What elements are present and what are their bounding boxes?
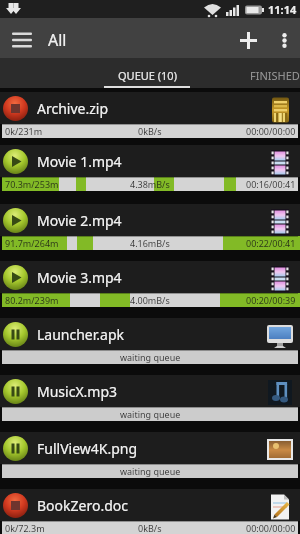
staticText: waiting queue (120, 408, 181, 420)
staticText: BookZero.doc (37, 496, 128, 515)
button[interactable]: Movie 1.mp4 (0, 141, 300, 200)
staticText: 4.00mB/s (130, 294, 170, 306)
staticText: QUEUE (10) (118, 68, 177, 83)
staticText: waiting queue (120, 465, 181, 477)
staticText: Archive.zip (37, 99, 108, 118)
staticText: All (48, 29, 67, 51)
button[interactable]: FINISHED (250, 58, 300, 88)
staticText: 00:16/00:41 (246, 178, 296, 190)
staticText: Movie 3.mp4 (37, 268, 122, 287)
button[interactable] (228, 20, 268, 60)
staticText: waiting queue (120, 351, 181, 363)
staticText: 11:14 (268, 2, 297, 17)
staticText: Launcher.apk (37, 325, 124, 344)
staticText: 4.16mB/s (130, 237, 170, 249)
staticText: FullView4K.png (37, 439, 138, 458)
button[interactable]: Movie 2.mp4 (0, 200, 300, 257)
staticText: 00:00/00:00 (246, 125, 296, 137)
staticText: FINISHED (250, 68, 300, 83)
staticText: 4.38mB/s (130, 178, 170, 190)
button[interactable]: MusicX.mp3 (0, 371, 300, 428)
button[interactable] (268, 20, 300, 60)
button[interactable] (0, 20, 44, 60)
button[interactable]: Movie 3.mp4 (0, 257, 300, 314)
staticText: 80.2m/239m (5, 294, 59, 306)
button[interactable]: Launcher.apk (0, 314, 300, 371)
staticText: Movie 2.mp4 (37, 211, 122, 230)
button[interactable]: FullView4K.png (0, 428, 300, 485)
button[interactable]: QUEUE (10) (52, 58, 242, 88)
staticText: 0k/72.3m (5, 522, 45, 534)
staticText: 0kB/s (138, 125, 162, 137)
staticText: Movie 1.mp4 (37, 152, 122, 171)
staticText: 00:22/00:41 (246, 237, 296, 249)
staticText: 0kB/s (138, 522, 162, 534)
button[interactable]: BookZero.doc (0, 485, 300, 534)
button[interactable]: Archive.zip (0, 88, 300, 141)
staticText: 70.3m/253m (5, 178, 59, 190)
staticText: 00:00/00:00 (246, 522, 296, 534)
staticText: MusicX.mp3 (37, 382, 118, 401)
staticText: 0k/231m (5, 125, 43, 137)
staticText: 00:20/00:39 (246, 294, 296, 306)
staticText: 91.7m/264m (5, 237, 59, 249)
